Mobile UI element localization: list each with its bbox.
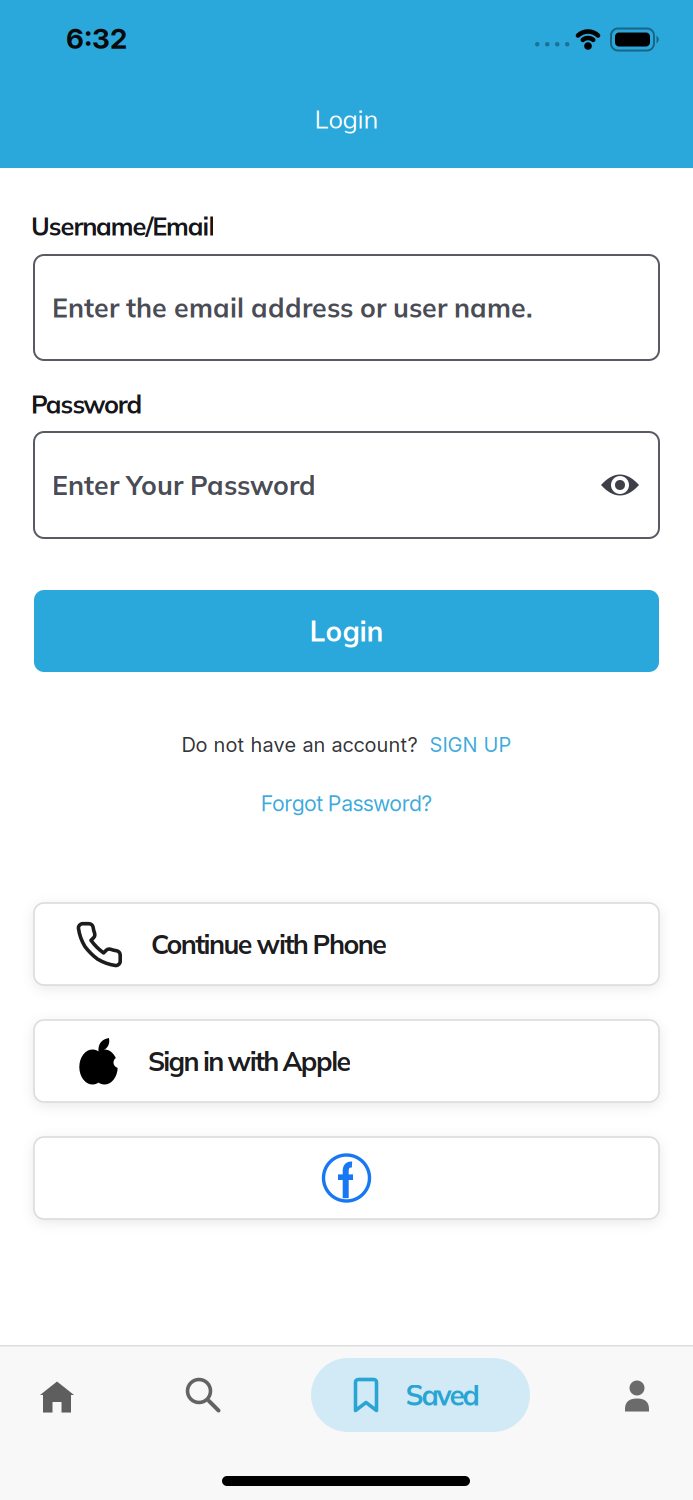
staticText: Saved <box>405 1377 479 1412</box>
button[interactable]: Search <box>164 1366 244 1426</box>
button[interactable]: Continue with Facebook <box>34 1137 659 1219</box>
staticText: 6:32 <box>66 22 127 55</box>
button[interactable]: Forgot Password? <box>261 791 432 816</box>
button[interactable]: Profile <box>597 1366 677 1426</box>
button[interactable]: Sign in with Apple <box>34 1020 659 1102</box>
staticText: Enter Your Password <box>52 468 316 502</box>
button[interactable]: Saved <box>311 1358 530 1432</box>
button[interactable]: Show password <box>601 473 639 497</box>
button[interactable]: Password field <box>34 432 659 538</box>
staticText: Enter the email address or user name. <box>52 291 533 324</box>
staticText: Login <box>314 103 378 135</box>
staticText: Username/Email <box>31 210 215 242</box>
staticText: Login <box>309 613 383 648</box>
staticText: SIGN UP <box>429 733 511 757</box>
staticText: Forgot Password? <box>261 791 432 816</box>
staticText: Sign in with Apple <box>148 1044 351 1078</box>
button[interactable]: Username or email field <box>34 255 659 360</box>
button[interactable]: Home <box>17 1367 97 1427</box>
button[interactable]: Continue with Phone <box>34 903 659 985</box>
staticText: Do not have an account? <box>181 733 417 757</box>
staticText: Password <box>31 388 143 420</box>
button[interactable]: SIGN UP <box>429 733 511 757</box>
staticText: Continue with Phone <box>151 927 387 961</box>
button[interactable]: Login <box>34 590 659 672</box>
